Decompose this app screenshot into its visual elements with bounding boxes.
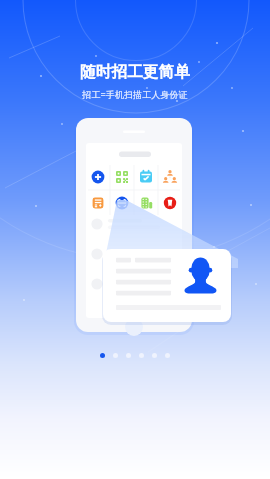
button[interactable]: Page 5 <box>152 353 157 358</box>
staticText: 招工=手机扫描工人身份证 <box>82 88 188 100</box>
button[interactable]: Page 3 <box>126 353 131 358</box>
staticText: 随时招工更简单 <box>80 62 190 82</box>
button[interactable]: Page 1 <box>100 353 105 358</box>
button[interactable]: Page 2 <box>113 353 118 358</box>
button[interactable]: Page 6 <box>165 353 170 358</box>
button[interactable]: Page 4 <box>139 353 144 358</box>
